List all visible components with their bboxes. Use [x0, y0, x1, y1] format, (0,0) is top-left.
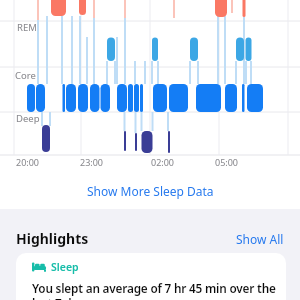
- staticText: 05:00: [215, 156, 239, 168]
- staticText: Show All: [236, 231, 284, 247]
- staticText: Core: [15, 69, 36, 82]
- staticText: You slept an average of 7 hr 45 min over…: [32, 280, 276, 300]
- button[interactable]: Sleep: [16, 253, 286, 300]
- staticText: 20:00: [16, 156, 40, 168]
- staticText: Deep: [16, 112, 40, 125]
- staticText: REM: [17, 21, 37, 34]
- staticText: 02:00: [151, 156, 175, 168]
- staticText: Highlights: [16, 229, 89, 248]
- staticText: Sleep: [51, 260, 79, 274]
- button[interactable]: Show More Sleep Data: [87, 183, 214, 199]
- button[interactable]: Show All: [236, 231, 284, 247]
- staticText: 23:00: [80, 156, 104, 168]
- staticText: Show More Sleep Data: [87, 183, 214, 199]
